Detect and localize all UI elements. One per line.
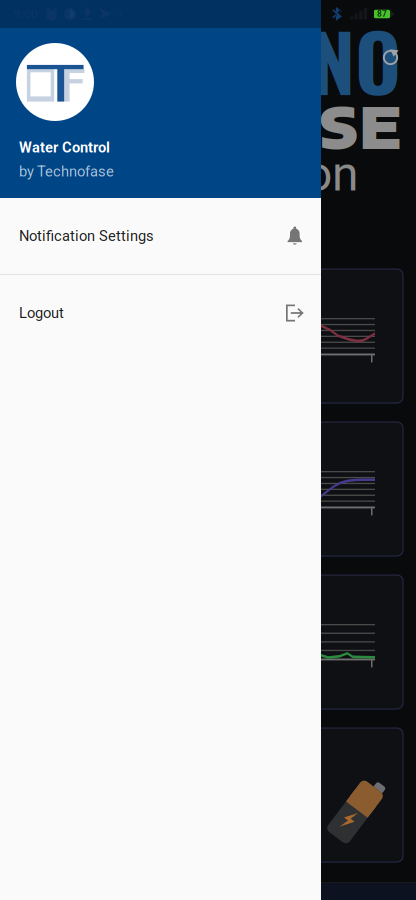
staticText: 87 (377, 9, 387, 19)
button[interactable]: Notification Settings (0, 198, 321, 274)
staticText: Irrigation (167, 146, 359, 202)
staticText: Logout (19, 304, 64, 322)
staticText: by Technofase (19, 163, 114, 180)
staticText: 9:00 (14, 7, 38, 21)
staticText: TECHNO (149, 1, 401, 118)
staticText: FASE (232, 90, 402, 162)
staticText: Notification Settings (19, 227, 154, 245)
button[interactable]: Logout (0, 275, 321, 351)
staticText: Water Control (19, 139, 110, 156)
